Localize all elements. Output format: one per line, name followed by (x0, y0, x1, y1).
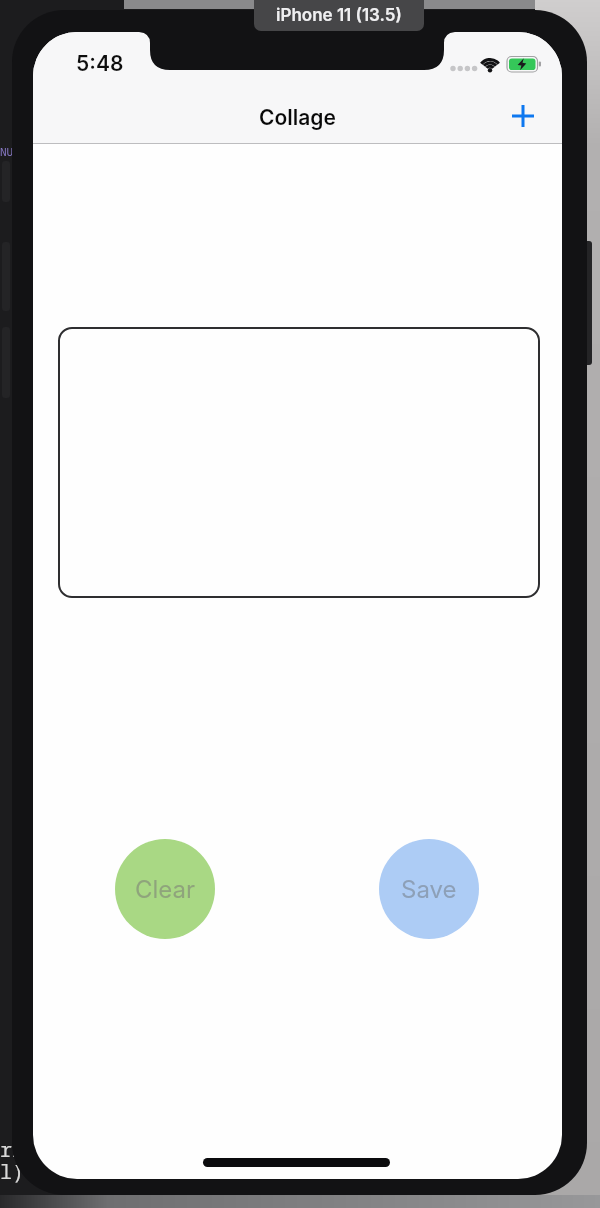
staticText: Clear (135, 875, 196, 904)
staticText: 5:48 (76, 51, 124, 76)
button[interactable] (501, 94, 545, 138)
staticText: l)"" (0, 1158, 48, 1185)
button[interactable]: Save (379, 839, 479, 939)
staticText: iPhone 11 (13.5) (276, 5, 402, 26)
staticText: NU (0, 144, 14, 159)
staticText: Save (401, 875, 457, 904)
button[interactable]: Clear (115, 839, 215, 939)
staticText: Collage (259, 105, 336, 130)
staticText: rr( (0, 1136, 36, 1163)
